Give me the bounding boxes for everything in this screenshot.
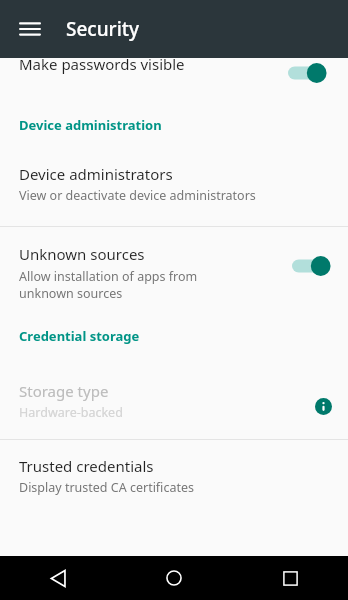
button[interactable]: Home <box>116 556 232 600</box>
button[interactable]: Unknown sources <box>0 227 348 327</box>
button[interactable]: Back <box>0 556 116 600</box>
staticText: Display trusted CA certificates <box>19 479 194 496</box>
staticText: Unknown sources <box>19 244 145 264</box>
button[interactable]: Make passwords visible <box>0 58 348 98</box>
button[interactable]: Recent apps <box>232 556 348 600</box>
staticText: Device administration <box>19 116 162 134</box>
button[interactable] <box>292 253 338 279</box>
staticText: Storage type <box>19 381 109 401</box>
staticText: Allow installation of apps from unknown … <box>19 268 198 302</box>
button[interactable]: Trusted credentials <box>0 454 348 504</box>
staticText: View or deactivate device administrators <box>19 187 256 204</box>
button[interactable]: Information <box>309 392 337 420</box>
button[interactable] <box>288 60 334 86</box>
staticText: Device administrators <box>19 164 173 184</box>
staticText: Hardware-backed <box>19 404 123 421</box>
staticText: Make passwords visible <box>19 54 185 74</box>
staticText: Credential storage <box>19 327 140 345</box>
button[interactable]: Device administrators <box>0 162 348 212</box>
button[interactable]: Open navigation menu <box>8 7 52 51</box>
staticText: Security <box>66 16 140 42</box>
staticText: Trusted credentials <box>19 456 154 476</box>
